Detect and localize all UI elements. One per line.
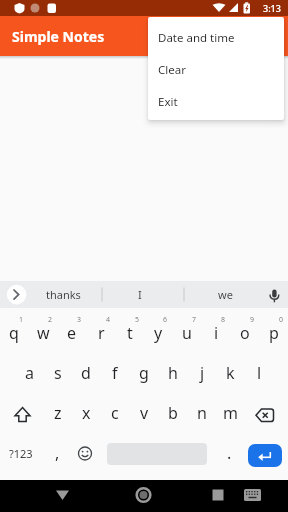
staticText: h bbox=[168, 362, 178, 384]
button[interactable]: , bbox=[43, 433, 71, 473]
button[interactable]: k bbox=[216, 353, 244, 393]
staticText: p bbox=[269, 322, 279, 344]
staticText: ?123 bbox=[9, 446, 33, 461]
staticText: I bbox=[138, 287, 142, 302]
staticText: , bbox=[55, 442, 60, 464]
button[interactable]: o bbox=[231, 313, 259, 353]
staticText: 1 bbox=[19, 315, 24, 325]
staticText: i bbox=[214, 322, 219, 344]
button[interactable] bbox=[204, 483, 232, 509]
staticText: f bbox=[112, 362, 118, 384]
button[interactable]: y bbox=[144, 313, 172, 353]
staticText: v bbox=[140, 402, 149, 424]
button[interactable]: r bbox=[87, 313, 115, 353]
staticText: u bbox=[182, 322, 192, 344]
staticText: Date and time bbox=[158, 30, 235, 46]
button[interactable]: z bbox=[44, 393, 72, 433]
button[interactable]: m bbox=[216, 393, 244, 433]
button[interactable]: e bbox=[58, 313, 86, 353]
staticText: thanks bbox=[46, 287, 81, 302]
staticText: 3:13 bbox=[263, 2, 281, 14]
button[interactable]: . bbox=[215, 433, 243, 473]
button[interactable]: l bbox=[245, 353, 273, 393]
button[interactable] bbox=[71, 437, 99, 469]
button[interactable]: g bbox=[130, 353, 158, 393]
button[interactable]: j bbox=[188, 353, 216, 393]
button[interactable]: ?123 bbox=[7, 433, 35, 473]
staticText: 3 bbox=[77, 315, 82, 325]
button[interactable]: Exit bbox=[148, 86, 284, 118]
staticText: l bbox=[257, 362, 262, 384]
button[interactable]: t bbox=[116, 313, 144, 353]
staticText: t bbox=[127, 322, 133, 344]
button[interactable] bbox=[48, 483, 76, 509]
button[interactable]: c bbox=[101, 393, 129, 433]
staticText: . bbox=[227, 442, 232, 464]
staticText: n bbox=[197, 402, 207, 424]
staticText: w bbox=[37, 322, 50, 344]
button[interactable]: f bbox=[101, 353, 129, 393]
button[interactable]: b bbox=[159, 393, 187, 433]
staticText: Clear bbox=[158, 62, 186, 78]
staticText: e bbox=[67, 322, 77, 344]
button[interactable]: v bbox=[130, 393, 158, 433]
button[interactable]: s bbox=[44, 353, 72, 393]
staticText: b bbox=[168, 402, 178, 424]
staticText: a bbox=[25, 362, 34, 384]
staticText: 6 bbox=[163, 315, 168, 325]
staticText: 4 bbox=[106, 315, 111, 325]
staticText: y bbox=[154, 322, 163, 344]
staticText: q bbox=[9, 322, 19, 344]
button[interactable]: u bbox=[173, 313, 201, 353]
staticText: 7 bbox=[192, 315, 197, 325]
button[interactable]: Date and time bbox=[148, 22, 284, 54]
staticText: 5 bbox=[135, 315, 140, 325]
staticText: 0 bbox=[279, 315, 284, 325]
button[interactable]: we bbox=[205, 281, 245, 308]
button[interactable] bbox=[130, 483, 158, 509]
button[interactable] bbox=[250, 397, 284, 429]
button[interactable] bbox=[4, 397, 38, 429]
staticText: r bbox=[98, 322, 105, 344]
staticText: 2 bbox=[48, 315, 53, 325]
button[interactable] bbox=[248, 444, 282, 467]
staticText: z bbox=[54, 402, 62, 424]
button[interactable]: p bbox=[260, 313, 288, 353]
button[interactable]: n bbox=[188, 393, 216, 433]
staticText: Simple Notes bbox=[12, 27, 105, 46]
button[interactable] bbox=[240, 483, 268, 509]
button[interactable]: h bbox=[159, 353, 187, 393]
button[interactable]: q bbox=[0, 313, 28, 353]
staticText: g bbox=[139, 362, 149, 384]
staticText: 9 bbox=[250, 315, 255, 325]
button[interactable]: a bbox=[15, 353, 43, 393]
staticText: we bbox=[218, 287, 233, 302]
staticText: 8 bbox=[221, 315, 226, 325]
staticText: o bbox=[240, 322, 250, 344]
staticText: s bbox=[54, 362, 62, 384]
button[interactable]: Clear bbox=[148, 54, 284, 86]
staticText: x bbox=[82, 402, 91, 424]
button[interactable]: w bbox=[29, 313, 57, 353]
staticText: k bbox=[226, 362, 235, 384]
staticText: c bbox=[111, 402, 119, 424]
staticText: m bbox=[223, 402, 238, 424]
button[interactable]: thanks bbox=[38, 281, 88, 308]
button[interactable]: x bbox=[72, 393, 100, 433]
button[interactable]: i bbox=[202, 313, 230, 353]
staticText: d bbox=[81, 362, 91, 384]
staticText: Exit bbox=[158, 94, 178, 110]
button[interactable]: I bbox=[120, 281, 160, 308]
staticText: j bbox=[200, 362, 205, 384]
button[interactable]: d bbox=[72, 353, 100, 393]
